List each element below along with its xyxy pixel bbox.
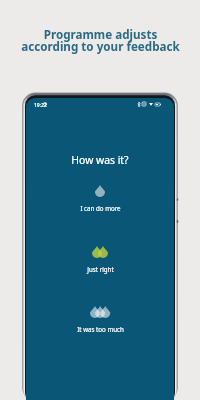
staticText: How was it?	[26, 153, 174, 167]
button[interactable]: It was too much	[26, 306, 174, 333]
button[interactable]: I can do more	[26, 185, 174, 212]
staticText: 19:22	[34, 102, 47, 109]
staticText: It was too much	[77, 325, 124, 333]
button[interactable]: Just right	[26, 246, 174, 273]
staticText: Just right	[87, 265, 114, 273]
staticText: Programme adjusts according to your feed…	[21, 27, 180, 55]
staticText: I can do more	[80, 204, 121, 212]
